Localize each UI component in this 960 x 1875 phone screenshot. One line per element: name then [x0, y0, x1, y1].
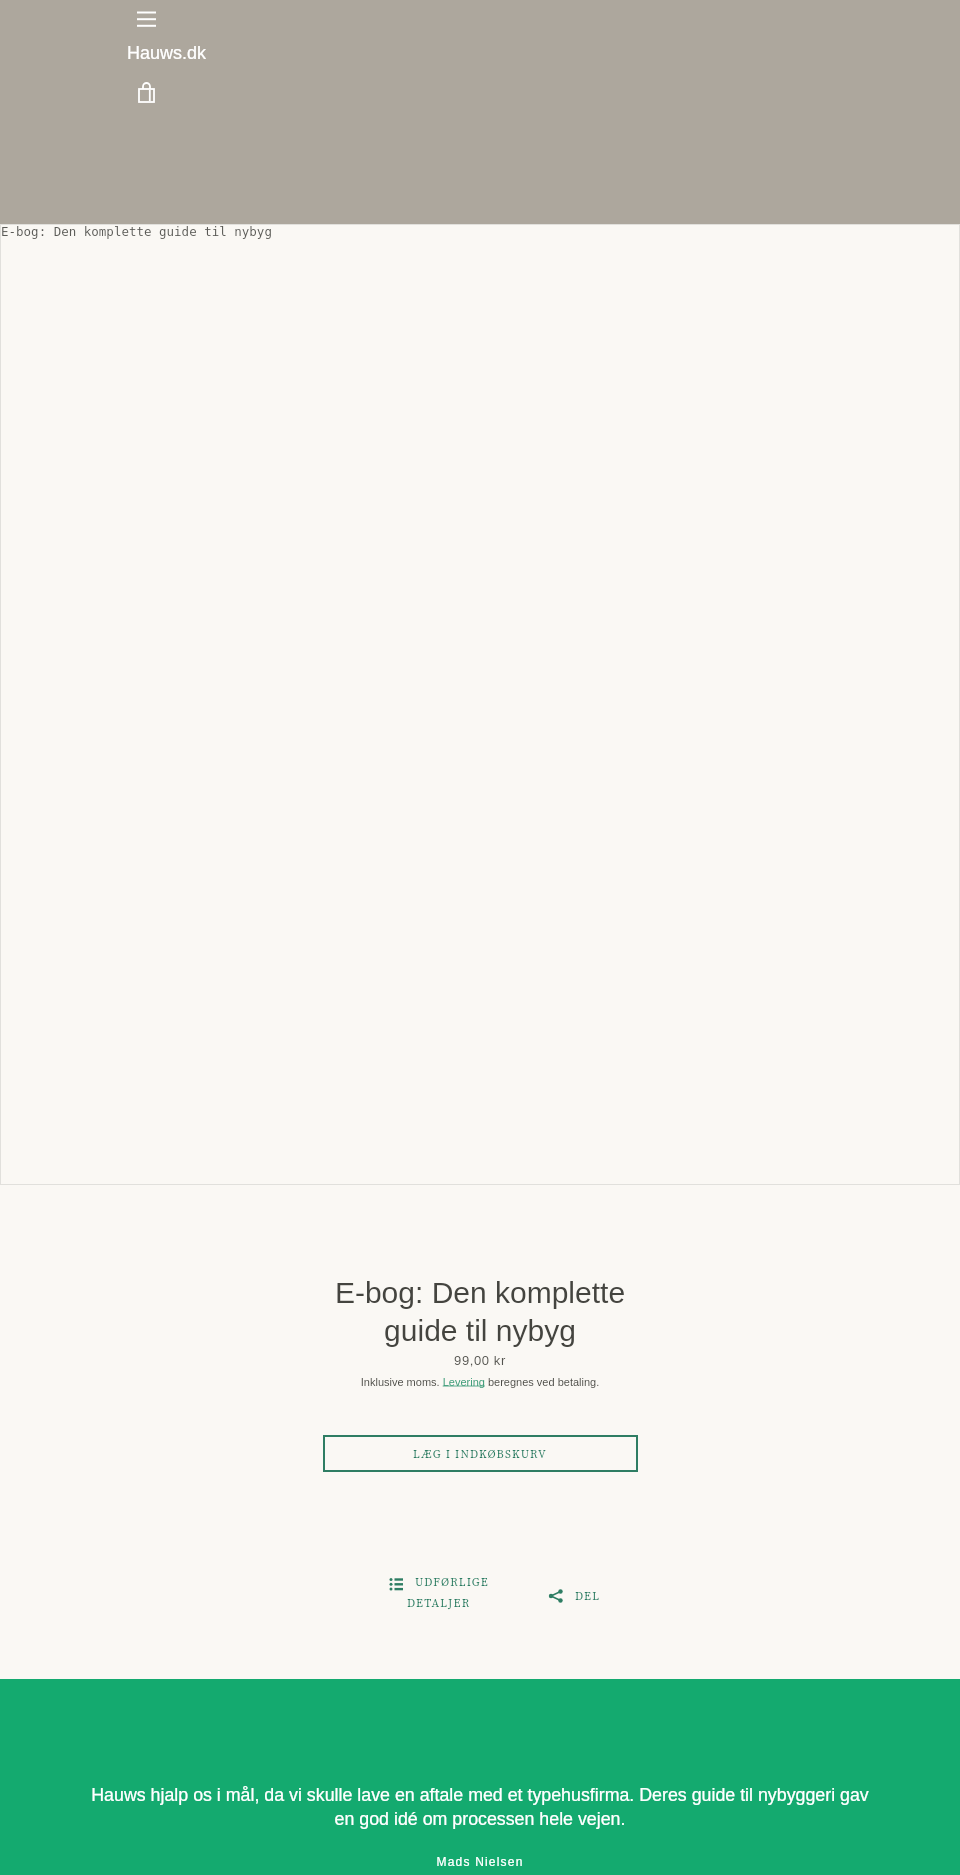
staticText: Hauws.dk — [127, 43, 207, 63]
button[interactable]: DEL — [548, 1588, 601, 1604]
button[interactable]: Produktbillede — [0, 224, 960, 1185]
button[interactable]: Menu — [130, 2, 164, 30]
staticText: UDFØRLIGE — [415, 1574, 489, 1590]
staticText: E-bog: Den komplette guide til nybyg — [1, 224, 272, 239]
staticText: Hauws hjalp os i mål, da vi skulle lave … — [84, 1785, 876, 1829]
staticText: Inklusive moms. Levering beregnes ved be… — [0, 1376, 960, 1388]
button[interactable]: LÆG I INDKØBSKURV — [323, 1435, 638, 1472]
button[interactable]: UDFØRLIGE — [382, 1574, 496, 1611]
staticText: Mads Nielsen — [0, 1855, 960, 1868]
staticText: 99,00 kr — [0, 1353, 960, 1368]
staticText: DEL — [575, 1588, 601, 1604]
button[interactable]: Cart — [132, 74, 162, 104]
staticText: LÆG I INDKØBSKURV — [413, 1446, 548, 1462]
staticText: E-bog: Den komplette guide til nybyg — [0, 1276, 960, 1347]
staticText: DETALJER — [407, 1595, 471, 1611]
